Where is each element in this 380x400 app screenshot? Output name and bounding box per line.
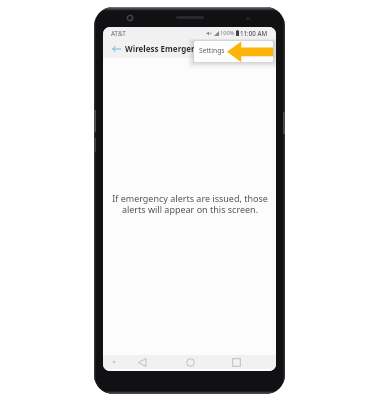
button[interactable]: Back <box>110 42 123 55</box>
button[interactable]: Home <box>167 355 215 371</box>
button[interactable]: Keyboard indicator <box>103 355 125 371</box>
button[interactable]: Settings <box>194 41 273 62</box>
staticText: Settings <box>199 46 225 55</box>
button[interactable]: Back <box>125 355 167 371</box>
staticText: 100% <box>220 29 235 37</box>
staticText: Wireless Emergency Alerts <box>125 43 231 54</box>
staticText: If emergency alerts are issued, those al… <box>112 192 268 216</box>
staticText: AT&T <box>111 29 126 37</box>
button[interactable]: Recent apps <box>215 355 263 371</box>
staticText: 11:00 AM <box>240 29 268 37</box>
